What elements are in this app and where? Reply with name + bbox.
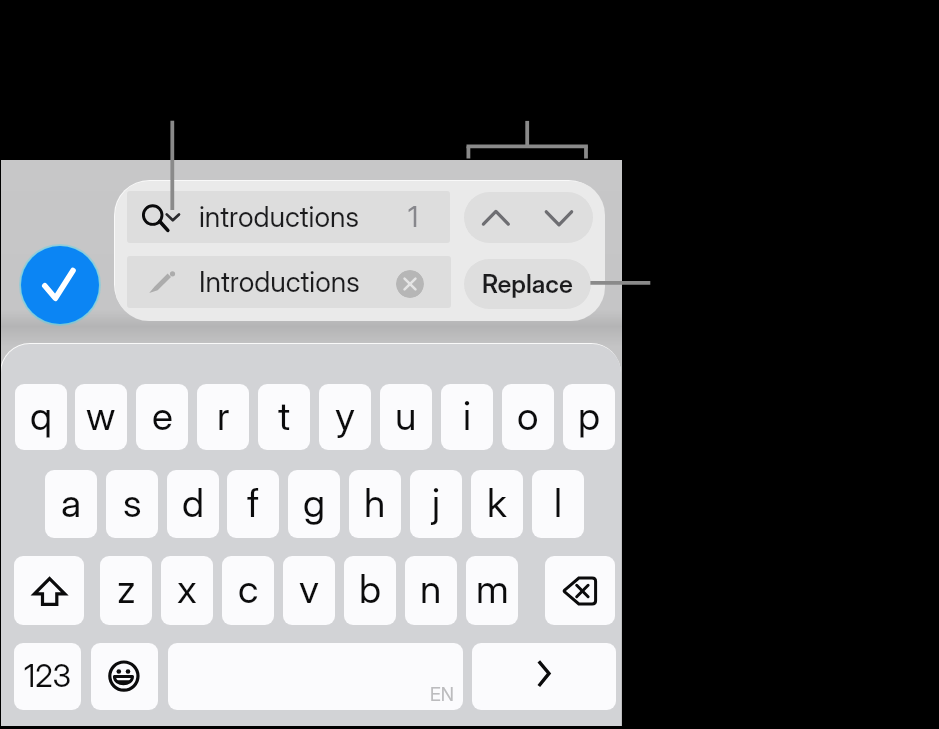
button[interactable]: Introductions bbox=[127, 256, 451, 308]
button[interactable]: z bbox=[100, 556, 152, 625]
staticText: p bbox=[578, 392, 601, 439]
staticText: 1 bbox=[408, 200, 419, 234]
staticText: e bbox=[152, 392, 173, 439]
button[interactable]: x bbox=[161, 556, 213, 625]
button[interactable]: y bbox=[319, 384, 371, 450]
button[interactable]: b bbox=[344, 556, 396, 625]
button[interactable]: u bbox=[380, 384, 432, 450]
button[interactable]: d bbox=[167, 470, 219, 538]
staticText: y bbox=[335, 392, 355, 439]
staticText: r bbox=[217, 392, 230, 439]
staticText: q bbox=[30, 392, 53, 439]
staticText: a bbox=[61, 479, 82, 526]
button[interactable]: a bbox=[45, 470, 97, 538]
staticText: m bbox=[476, 565, 509, 612]
staticText: c bbox=[238, 565, 259, 612]
button[interactable]: n bbox=[405, 556, 457, 625]
button[interactable]: v bbox=[283, 556, 335, 625]
staticText: 123 bbox=[24, 657, 72, 695]
button[interactable]: introductions bbox=[127, 191, 450, 243]
button[interactable]: Done bbox=[21, 246, 99, 324]
button[interactable]: e bbox=[136, 384, 188, 450]
staticText: EN bbox=[430, 683, 454, 705]
staticText: t bbox=[278, 392, 291, 439]
button[interactable]: Replace bbox=[464, 259, 591, 309]
staticText: i bbox=[463, 392, 472, 439]
button[interactable]: Next bbox=[472, 643, 616, 710]
staticText: k bbox=[487, 479, 507, 526]
button[interactable]: w bbox=[75, 384, 127, 450]
button[interactable]: k bbox=[471, 470, 523, 538]
staticText: u bbox=[395, 392, 417, 439]
button[interactable]: Shift bbox=[14, 556, 84, 625]
button[interactable]: m bbox=[466, 556, 518, 625]
button[interactable]: s bbox=[106, 470, 158, 538]
staticText: d bbox=[182, 479, 205, 526]
button[interactable]: j bbox=[410, 470, 462, 538]
button[interactable]: q bbox=[15, 384, 67, 450]
staticText: s bbox=[123, 479, 142, 526]
button[interactable]: r bbox=[197, 384, 249, 450]
button[interactable]: h bbox=[349, 470, 401, 538]
staticText: w bbox=[86, 392, 116, 439]
staticText: Introductions bbox=[199, 265, 360, 299]
staticText: o bbox=[517, 392, 539, 439]
button[interactable]: o bbox=[502, 384, 554, 450]
staticText: f bbox=[247, 479, 259, 526]
button[interactable]: t bbox=[258, 384, 310, 450]
button[interactable]: c bbox=[222, 556, 274, 625]
button[interactable]: Backspace bbox=[545, 556, 615, 625]
button[interactable]: Clear replace text bbox=[396, 270, 424, 298]
button[interactable]: l bbox=[532, 470, 584, 538]
staticText: h bbox=[364, 479, 386, 526]
button[interactable]: Previous match bbox=[464, 192, 528, 243]
button[interactable]: Numbers bbox=[14, 643, 81, 710]
button[interactable]: Emoji bbox=[91, 643, 158, 710]
staticText: introductions bbox=[199, 200, 359, 234]
staticText: n bbox=[420, 565, 442, 612]
staticText: x bbox=[177, 565, 197, 612]
button[interactable]: f bbox=[227, 470, 279, 538]
button[interactable]: Space bbox=[168, 643, 463, 710]
staticText: g bbox=[303, 479, 326, 526]
button[interactable]: i bbox=[441, 384, 493, 450]
staticText: j bbox=[432, 479, 441, 526]
button[interactable]: g bbox=[288, 470, 340, 538]
staticText: b bbox=[359, 565, 382, 612]
staticText: l bbox=[554, 479, 563, 526]
button[interactable]: Next match bbox=[528, 192, 593, 243]
staticText: Replace bbox=[482, 269, 573, 299]
staticText: v bbox=[299, 565, 319, 612]
staticText: z bbox=[117, 565, 136, 612]
button[interactable]: p bbox=[563, 384, 615, 450]
